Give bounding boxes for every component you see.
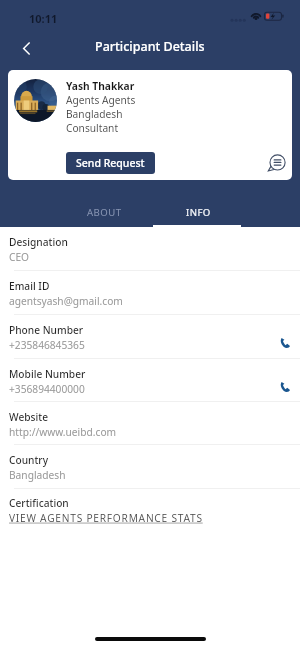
staticText: Consultant	[66, 121, 119, 135]
staticText: Designation	[9, 235, 68, 249]
staticText: Bangladesh	[9, 468, 66, 482]
staticText: CEO	[9, 250, 30, 264]
button[interactable]: Send Request	[66, 152, 155, 174]
button[interactable]: ABOUT	[54, 180, 154, 227]
staticText: Bangladesh	[66, 107, 123, 121]
button[interactable]: Call	[274, 375, 296, 397]
staticText: Yash Thakkar	[66, 79, 135, 93]
staticText: 10:11	[29, 11, 58, 26]
button[interactable]: Website	[0, 402, 300, 445]
button[interactable]: Back	[10, 32, 42, 64]
staticText: +235846845365	[9, 338, 85, 352]
staticText: Certification	[9, 496, 69, 510]
button[interactable]: Mobile Number	[0, 359, 300, 402]
button[interactable]: INFO	[148, 180, 248, 227]
staticText: http://www.ueibd.com	[9, 425, 117, 439]
staticText: ABOUT	[87, 206, 122, 219]
staticText: +356894400000	[9, 382, 85, 396]
staticText: Website	[9, 410, 48, 424]
staticText: INFO	[186, 206, 211, 219]
button[interactable]: Certification	[0, 489, 300, 532]
button[interactable]: Phone Number	[0, 315, 300, 359]
staticText: Country	[9, 453, 49, 467]
staticText: agentsyash@gmail.com	[9, 294, 123, 308]
button[interactable]: Designation	[0, 227, 300, 271]
staticText: Participant Details	[95, 38, 205, 55]
button[interactable]: Email ID	[0, 271, 300, 315]
button[interactable]: Message	[264, 150, 289, 175]
button[interactable]: Call	[274, 331, 296, 353]
button[interactable]: Country	[0, 445, 300, 489]
staticText: Mobile Number	[9, 367, 86, 381]
staticText: Agents Agents	[66, 93, 136, 107]
staticText: Phone Number	[9, 323, 84, 337]
staticText: Send Request	[76, 156, 145, 170]
staticText: Email ID	[9, 279, 50, 293]
staticText: VIEW AGENTS PERFORMANCE STATS	[9, 511, 203, 525]
